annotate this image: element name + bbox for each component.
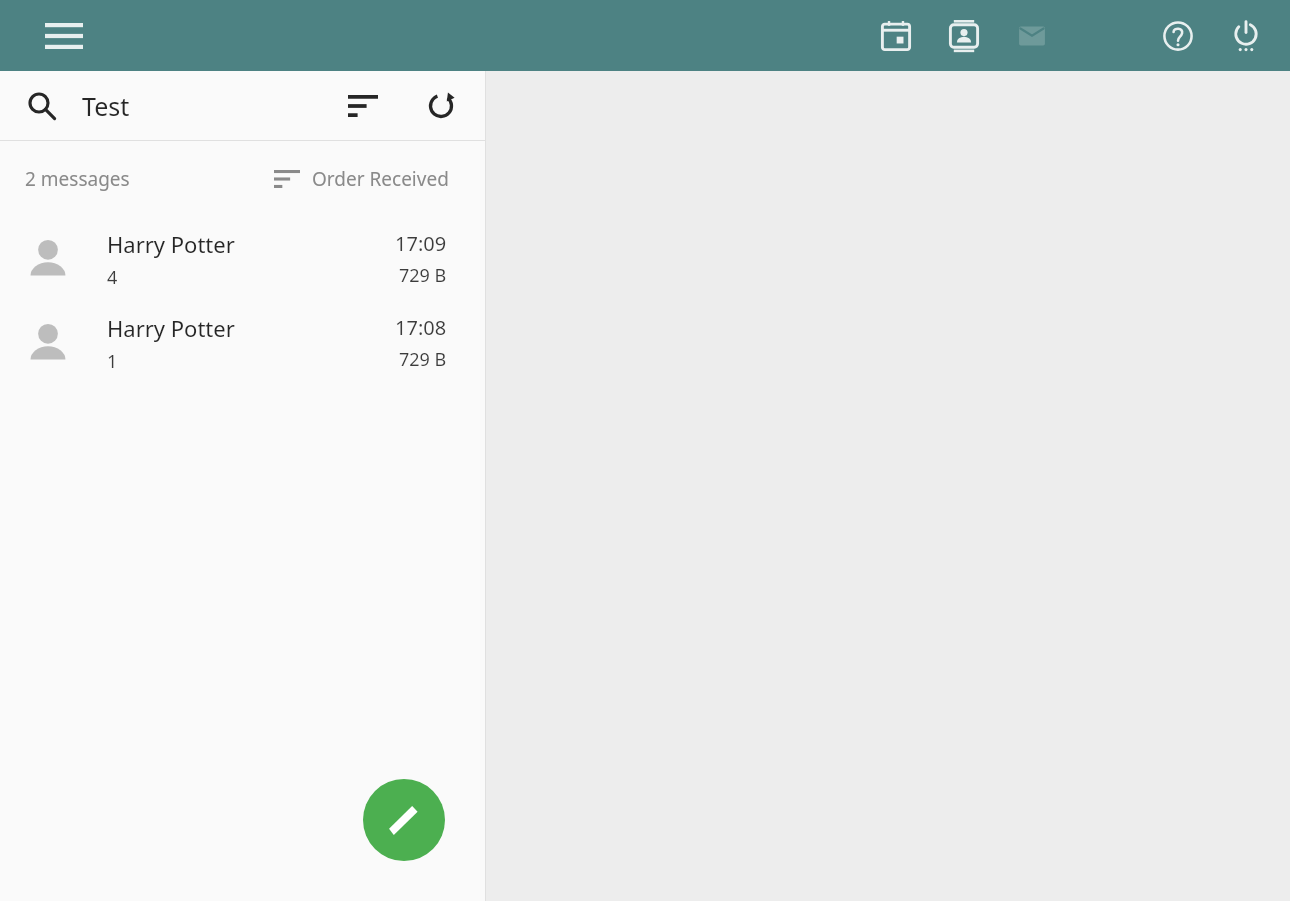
staticText: 729 B [399,347,447,372]
staticText: 2 messages [25,166,130,192]
staticText: 729 B [399,263,447,288]
staticText: 17:09 [395,230,447,257]
button[interactable]: Compose [363,779,445,861]
button[interactable]: Calendar [868,8,924,64]
button[interactable]: Harry Potter [0,217,485,301]
button[interactable]: Refresh [415,80,467,132]
button[interactable]: Harry Potter [0,301,485,385]
button[interactable]: Sort [337,80,389,132]
button[interactable]: Contacts [936,8,992,64]
button[interactable]: Menu [38,12,90,60]
staticText: Test [82,89,130,123]
staticText: Harry Potter [107,229,235,259]
staticText: 17:08 [395,314,447,341]
staticText: Order Received [312,166,449,192]
staticText: 4 [107,265,118,290]
button[interactable]: Search [16,80,68,132]
button[interactable]: Order Received [274,166,449,192]
button[interactable]: Help [1150,8,1206,64]
button[interactable]: Power options [1218,8,1274,64]
staticText: 1 [107,349,118,374]
staticText: Harry Potter [107,313,235,343]
button[interactable]: Mail [1004,8,1060,64]
